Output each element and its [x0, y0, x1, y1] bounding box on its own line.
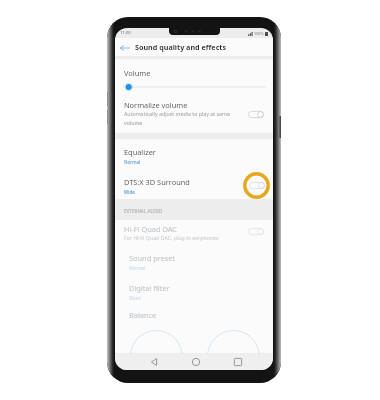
staticText: Sound quality and effects	[135, 42, 227, 52]
button[interactable]: Back	[145, 354, 163, 370]
staticText: Digital filter	[129, 283, 170, 293]
staticText: Normal	[129, 265, 146, 271]
button[interactable]: Volume	[115, 68, 273, 78]
staticText: 11:00	[120, 30, 131, 36]
button[interactable]: Hi-Fi Quad DAC	[115, 224, 273, 241]
staticText: Automatically adjust media to play at sa…	[124, 110, 230, 127]
staticText: For Hi-Fi Quad DAC, plug in earphones	[124, 234, 219, 241]
button[interactable]: DTS:X 3D Surround switch	[243, 172, 270, 199]
staticText: Balance	[129, 310, 157, 320]
staticText: Normalize volume	[124, 100, 188, 110]
button[interactable]: Normalize volume	[115, 100, 273, 127]
staticText: Hi-Fi Quad DAC	[124, 224, 177, 234]
button[interactable]: Back	[115, 38, 273, 56]
staticText: Equalizer	[124, 147, 156, 157]
button[interactable]: Recents	[229, 354, 247, 370]
staticText: Volume	[124, 68, 151, 78]
other: Back	[118, 41, 131, 54]
staticText: Sound preset	[129, 253, 176, 263]
button[interactable]: Home	[187, 354, 205, 370]
staticText: 100%	[254, 31, 264, 36]
button[interactable]: Balance	[115, 310, 273, 320]
staticText: Short	[129, 295, 141, 301]
staticText: EXTERNAL AUDIO	[124, 208, 163, 214]
staticText: Wide	[124, 189, 135, 195]
button[interactable]: DTS:X 3D Surround	[115, 177, 273, 195]
button[interactable]: Volume slider	[115, 82, 273, 92]
button[interactable]: Sound preset	[115, 253, 273, 271]
staticText: DTS:X 3D Surround	[124, 177, 190, 187]
button[interactable]: Digital filter	[115, 283, 273, 301]
staticText: Normal	[124, 159, 141, 165]
button[interactable]: Equalizer	[115, 147, 273, 165]
